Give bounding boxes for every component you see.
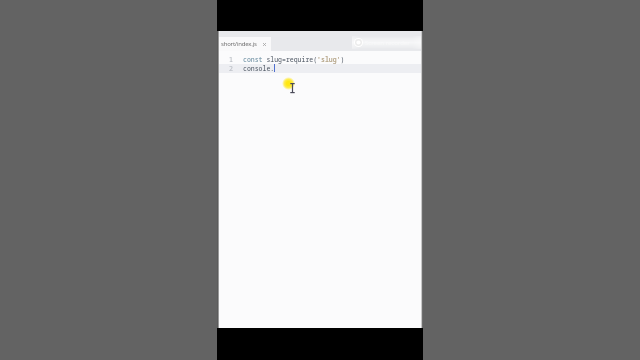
button[interactable]: Close tab <box>262 42 267 47</box>
staticText: 2 <box>229 64 233 73</box>
button[interactable]: Code editor <box>218 51 422 328</box>
staticText: 1 <box>229 55 233 64</box>
staticText: short/index.js <box>221 40 257 48</box>
button[interactable]: short/index.js <box>218 37 271 51</box>
staticText: const slug=require('slug') <box>243 55 345 64</box>
button[interactable]: Screen recorder <box>352 36 422 49</box>
button[interactable]: Play video <box>217 0 423 360</box>
staticText: console. <box>243 64 275 73</box>
